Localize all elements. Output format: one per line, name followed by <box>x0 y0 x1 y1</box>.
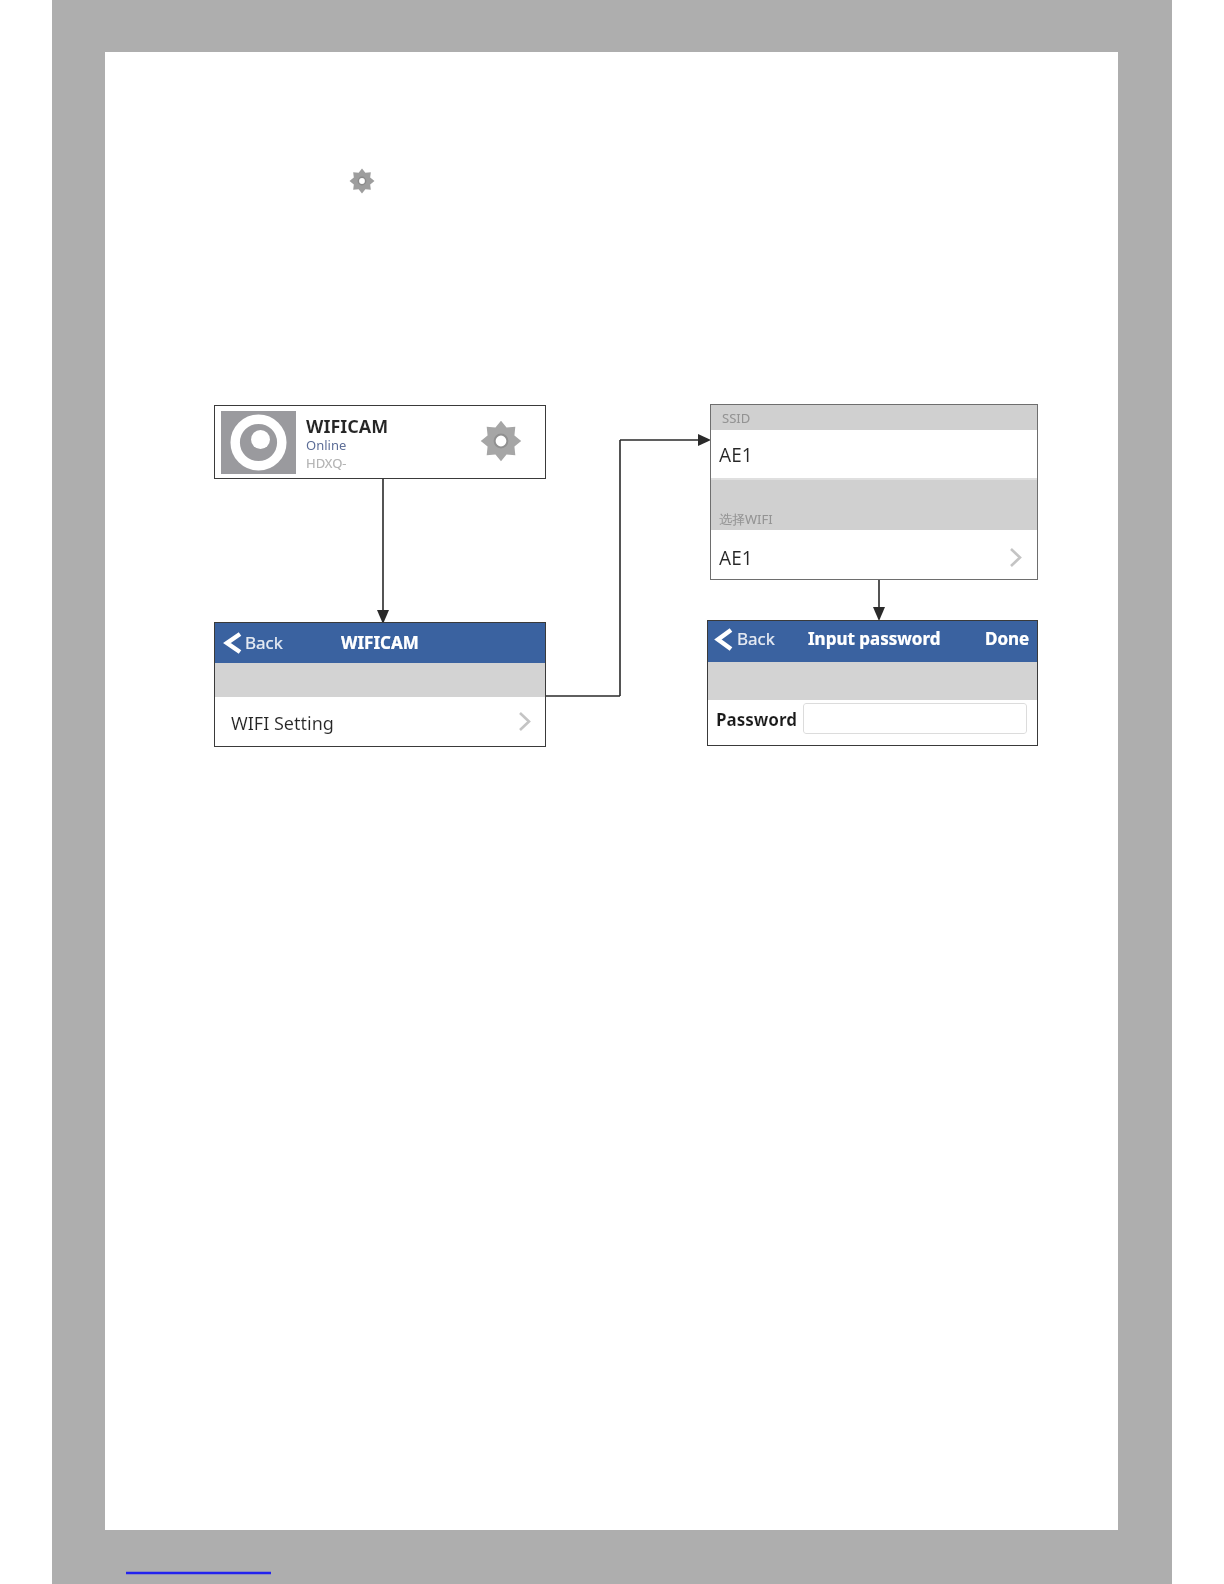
staticText: HDXQ- <box>306 454 347 472</box>
staticText: AE1 <box>719 442 753 468</box>
button[interactable]: Back <box>215 623 325 663</box>
button[interactable] <box>803 703 1027 734</box>
button[interactable]: Back <box>708 621 818 662</box>
staticText: SSID <box>722 409 751 427</box>
staticText: Done <box>985 627 1030 650</box>
button[interactable]: Device settings <box>479 419 523 463</box>
staticText: WIFI Setting <box>231 711 334 736</box>
button[interactable] <box>215 697 545 746</box>
staticText: AE1 <box>719 545 753 571</box>
staticText: Password <box>716 708 797 731</box>
button[interactable] <box>711 530 1037 579</box>
staticText: 选择WIFI <box>719 510 773 528</box>
staticText: Back <box>245 631 283 654</box>
staticText: WIFICAM <box>306 414 389 439</box>
staticText: Back <box>737 627 775 650</box>
button[interactable] <box>711 430 1037 480</box>
staticText: WIFICAM <box>341 631 419 654</box>
staticText: Online <box>306 436 347 454</box>
button[interactable]: Settings <box>349 168 375 194</box>
staticText: Input password <box>808 627 941 650</box>
button[interactable] <box>214 405 546 479</box>
button[interactable] <box>975 621 1035 662</box>
